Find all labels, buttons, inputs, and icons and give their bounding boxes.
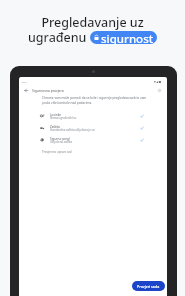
button[interactable]: Lozinke [19,113,167,124]
staticText: Lozinke [50,113,62,117]
staticText: Uključena zaštita [50,140,73,144]
staticText: sigurnost [101,31,154,44]
button[interactable]: Provjeri sada [132,281,165,291]
staticText: Chrome vam može pomoći da se brže i sigu… [42,96,147,105]
staticText: Pregledavanje uz [41,14,144,31]
staticText: Nema ugroženih loz [50,116,77,120]
staticText: Standardna zaštita uključena je za [50,128,95,132]
button[interactable]: Natrag [21,85,32,96]
button[interactable]: Sigurno pregl [19,137,167,148]
staticText: 9:41 [22,80,27,83]
staticText: ugrađenu [28,29,87,46]
staticText: Sigurnosna provjera [32,88,64,93]
button[interactable]: Postavke [154,85,165,96]
button[interactable]: Zaštita [19,125,167,136]
staticText: Sigurno pregl [50,137,70,141]
staticText: Provjereno upravo sad [42,150,72,154]
staticText: Zaštita [50,125,60,129]
staticText: Provjeri sada [137,284,160,289]
